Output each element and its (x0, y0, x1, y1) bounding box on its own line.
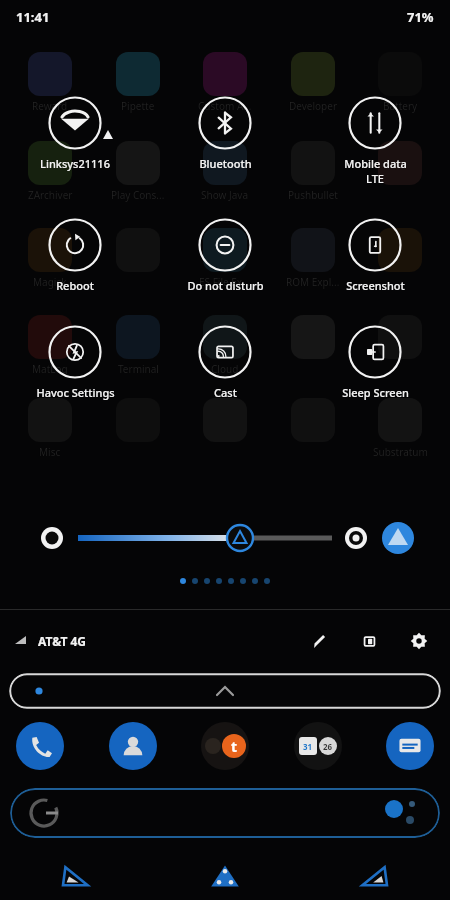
staticText: Havoc Settings (36, 385, 115, 400)
staticText: Misc (39, 445, 61, 459)
staticText: Sleep Screen (342, 385, 409, 400)
staticText: Play Cons... (111, 188, 165, 202)
button[interactable]: Recents (300, 852, 450, 900)
button[interactable]: Settings (402, 624, 436, 658)
button[interactable]: Brightness (0, 516, 450, 560)
button[interactable]: Screenshot (300, 218, 450, 293)
staticText: Linksys21116 (40, 156, 110, 171)
staticText: LTE (366, 171, 384, 186)
staticText: Cloud (211, 362, 239, 376)
button[interactable]: Reboot (0, 218, 150, 293)
staticText: Mobile data (344, 156, 407, 171)
button[interactable]: Sleep Screen (300, 325, 450, 400)
staticText: 11:41 (16, 8, 50, 26)
staticText: Show Java (201, 188, 249, 202)
staticText: Pipette (121, 99, 155, 113)
button[interactable]: Back (0, 852, 150, 900)
button[interactable]: Switch user (352, 624, 386, 658)
staticText: ZArchiver (28, 188, 73, 202)
staticText: ES File Ex... (199, 275, 251, 289)
button[interactable]: Mobile data (300, 96, 450, 186)
staticText: Battery (383, 99, 418, 113)
staticText: 71% (407, 8, 434, 26)
button[interactable]: Messages (386, 722, 434, 770)
staticText: Do not disturb (187, 278, 264, 293)
button[interactable] (9, 673, 441, 709)
staticText: 26 (323, 741, 333, 752)
staticText: Screenshot (346, 278, 405, 293)
staticText: AT&T 4G (38, 633, 87, 649)
button[interactable]: Folder (201, 722, 249, 770)
button[interactable]: Do not disturb (150, 218, 300, 293)
staticText: 31 (303, 741, 313, 752)
staticText: ROM Expl... (286, 275, 340, 289)
staticText: Pushbullet (288, 188, 338, 202)
staticText: Terminal (118, 362, 159, 376)
staticText: Bluetooth (199, 156, 252, 171)
staticText: Reward (32, 99, 68, 113)
button[interactable]: Folder (294, 722, 342, 770)
staticText: Magisk (33, 275, 67, 289)
staticText: Reboot (56, 278, 94, 293)
staticText: t (231, 737, 238, 756)
button[interactable]: Contacts (109, 722, 157, 770)
staticText: Developer (289, 99, 338, 113)
staticText: Cast (214, 385, 237, 400)
staticText: Substratum (373, 445, 428, 459)
button[interactable]: Bluetooth (150, 96, 300, 171)
button[interactable]: Edit tiles (302, 624, 336, 658)
button[interactable]: Search (10, 788, 440, 838)
button[interactable]: Home (150, 852, 300, 900)
button[interactable]: Linksys21116 (0, 96, 150, 171)
button[interactable]: Phone (16, 722, 64, 770)
staticText: MatLog (32, 362, 68, 376)
button[interactable]: Cast (150, 325, 300, 400)
button[interactable]: Havoc Settings (0, 325, 150, 400)
staticText: Custom A... (198, 99, 252, 113)
